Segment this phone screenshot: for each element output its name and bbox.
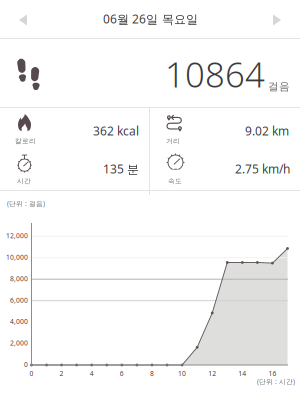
- staticText: 8: [150, 369, 154, 378]
- staticText: 10864: [165, 51, 265, 97]
- staticText: 135 분: [103, 161, 139, 177]
- staticText: (단위 : 걸음): [7, 199, 45, 208]
- button[interactable]: Next day: [255, 1, 299, 39]
- staticText: 362 kcal: [93, 123, 139, 139]
- staticText: 10: [178, 369, 186, 378]
- staticText: 2.75 km/h: [235, 161, 290, 177]
- staticText: 6,000: [10, 296, 28, 304]
- staticText: 거리: [166, 137, 180, 145]
- staticText: 칼로리: [15, 137, 36, 145]
- staticText: 6: [120, 369, 124, 378]
- staticText: 4: [90, 369, 94, 378]
- staticText: 2,000: [10, 339, 28, 347]
- staticText: 4,000: [10, 317, 28, 326]
- staticText: 2: [60, 369, 64, 378]
- staticText: 12,000: [6, 231, 28, 240]
- staticText: 14: [238, 369, 246, 378]
- button[interactable]: Previous day: [1, 1, 45, 39]
- staticText: 8,000: [10, 274, 28, 283]
- staticText: 06월 26일 목요일: [103, 11, 198, 27]
- staticText: 10,000: [6, 253, 28, 262]
- staticText: 0: [24, 360, 28, 369]
- staticText: 속도: [168, 177, 182, 185]
- staticText: 16: [268, 369, 276, 378]
- staticText: (단위 : 시간): [257, 377, 295, 386]
- staticText: 12: [208, 369, 216, 378]
- staticText: 0: [29, 369, 33, 378]
- staticText: 9.02 km: [245, 123, 289, 139]
- staticText: 시간: [17, 177, 31, 185]
- staticText: 걸음: [268, 80, 290, 93]
